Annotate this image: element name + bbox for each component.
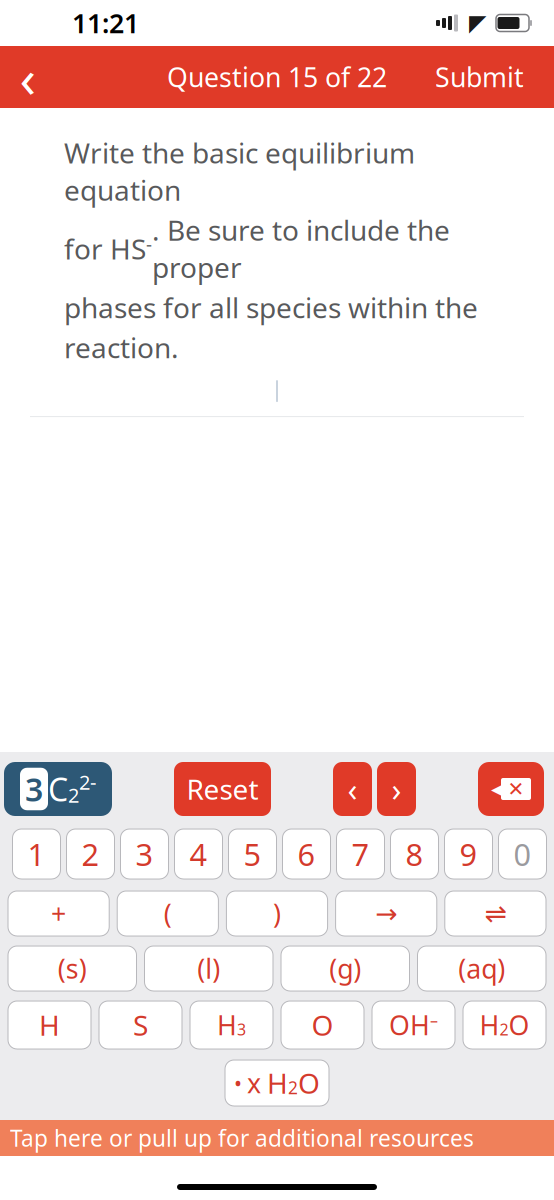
button[interactable]: ( [117, 891, 218, 936]
staticText: Write the basic equilibrium equation [64, 134, 415, 208]
button[interactable]: 6 [282, 829, 330, 879]
button[interactable]: 0 [498, 829, 546, 879]
button[interactable]: 3 [120, 829, 168, 879]
button[interactable]: S [99, 1001, 182, 1049]
staticText: for HS [64, 230, 146, 267]
button[interactable]: 8 [390, 829, 438, 879]
button[interactable]: Move cursor left [333, 762, 372, 816]
button[interactable]: 4 [174, 829, 222, 879]
staticText: ) [273, 896, 281, 931]
staticText: . Be sure to include the proper [152, 211, 450, 286]
staticText: 2 [288, 1076, 298, 1099]
button[interactable]: (g) [281, 946, 409, 991]
button[interactable]: 5 [228, 829, 276, 879]
staticText: Tap here or pull up for additional resou… [10, 1123, 474, 1153]
button[interactable]: Back [0, 46, 56, 108]
button[interactable]: Tap here or pull up for additional resou… [0, 1120, 554, 1156]
button[interactable]: Reset [174, 762, 271, 816]
button[interactable]: ⇌ [445, 891, 546, 936]
staticText: 4 [189, 834, 207, 874]
staticText: 3 [237, 1019, 246, 1040]
button[interactable]: H [463, 1001, 546, 1049]
staticText: + [51, 896, 66, 931]
staticText: › [391, 768, 401, 810]
staticText: 7 [351, 834, 369, 874]
staticText: x [247, 1065, 261, 1101]
staticText: O [311, 1006, 333, 1044]
staticText: Reset [186, 770, 258, 808]
staticText: 8 [405, 834, 423, 874]
staticText: ◤ [469, 10, 486, 36]
staticText: phases for all species within the [64, 289, 478, 326]
button[interactable]: → [336, 891, 437, 936]
button[interactable]: (l) [144, 946, 273, 991]
button[interactable]: 7 [336, 829, 384, 879]
staticText: H [479, 1007, 499, 1043]
button[interactable]: (aq) [417, 946, 546, 991]
button[interactable]: ) [226, 891, 328, 936]
staticText: 6 [297, 834, 315, 874]
staticText: Submit [435, 59, 524, 95]
staticText: 3 [25, 768, 43, 810]
button[interactable]: 2 [66, 829, 114, 879]
staticText: 5 [243, 834, 261, 874]
staticText: Question 15 of 22 [167, 59, 387, 95]
button[interactable]: 9 [444, 829, 492, 879]
staticText: 3 [135, 834, 153, 874]
button[interactable]: + [8, 891, 109, 936]
button[interactable]: OH [372, 1001, 455, 1049]
button[interactable]: (s) [8, 946, 136, 991]
staticText: (s) [58, 951, 87, 986]
staticText: → [375, 898, 397, 929]
staticText: 2 [68, 782, 79, 808]
staticText: C [48, 768, 68, 810]
staticText: OH [389, 1007, 430, 1043]
staticText: ( [164, 896, 172, 931]
staticText: 2 [81, 834, 99, 874]
staticText: - [146, 232, 152, 256]
staticText: 11:21 [72, 5, 139, 41]
staticText: • [234, 1069, 242, 1097]
staticText: ✕ [507, 778, 524, 800]
button[interactable]: O [281, 1001, 364, 1049]
staticText: (g) [329, 951, 361, 986]
button[interactable]: Delete [478, 762, 544, 816]
staticText: reaction. [64, 329, 179, 366]
button[interactable]: 3 [4, 762, 112, 816]
staticText: ‹ [347, 768, 357, 810]
button[interactable]: H [8, 1001, 91, 1049]
button[interactable]: • [225, 1060, 329, 1106]
staticText: – [430, 1009, 438, 1031]
staticText: H [39, 1006, 60, 1044]
button[interactable]: Submit [419, 46, 540, 108]
staticText: 2 [499, 1019, 508, 1040]
staticText: O [508, 1007, 529, 1043]
staticText: (aq) [458, 951, 505, 986]
button[interactable]: 1 [12, 829, 60, 879]
staticText: (l) [197, 951, 220, 986]
staticText: H [217, 1007, 237, 1043]
staticText: 2- [79, 769, 96, 795]
staticText: H [267, 1064, 288, 1102]
staticText: S [133, 1006, 148, 1044]
staticText: 0 [513, 834, 531, 874]
staticText: ⇌ [484, 898, 506, 929]
staticText: ◀ [491, 779, 504, 799]
staticText: ‹ [19, 42, 36, 112]
staticText: 9 [459, 834, 477, 874]
staticText: O [298, 1064, 320, 1102]
staticText: 1 [27, 834, 45, 874]
button[interactable]: Move cursor right [377, 762, 416, 816]
button[interactable]: H [190, 1001, 273, 1049]
